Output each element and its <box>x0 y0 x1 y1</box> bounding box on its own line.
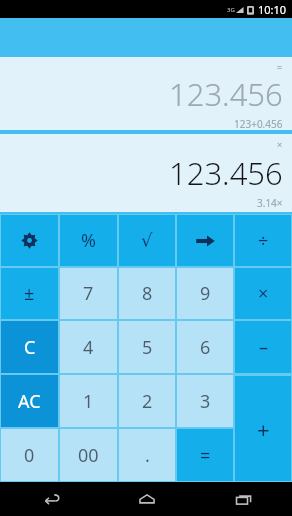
staticText: 1 <box>83 389 94 414</box>
button[interactable]: 1 <box>60 375 117 427</box>
button[interactable]: 4 <box>60 321 117 373</box>
button[interactable]: C <box>1 321 58 373</box>
button[interactable]: = <box>0 57 292 130</box>
button[interactable]: × <box>235 268 291 319</box>
staticText: 7 <box>83 281 94 306</box>
button[interactable]: + <box>235 376 291 481</box>
staticText: . <box>145 443 150 468</box>
staticText: × <box>277 138 283 150</box>
staticText: 00 <box>78 443 99 468</box>
staticText: 3 <box>200 389 211 414</box>
button[interactable]: Recents <box>195 482 292 516</box>
button[interactable]: Settings <box>1 215 58 266</box>
button[interactable]: × <box>0 134 292 212</box>
button[interactable]: √ <box>119 215 175 266</box>
staticText: 10:10 <box>258 2 287 17</box>
staticText: = <box>277 61 283 73</box>
button[interactable]: 00 <box>60 429 117 481</box>
button[interactable]: ÷ <box>235 215 291 266</box>
button[interactable]: 7 <box>60 268 117 319</box>
staticText: 3G <box>227 6 235 14</box>
button[interactable]: 5 <box>119 321 175 373</box>
button[interactable]: – <box>235 321 291 373</box>
button[interactable]: Back <box>0 482 98 516</box>
button[interactable]: 0 <box>1 429 58 481</box>
staticText: 0 <box>24 443 35 468</box>
staticText: 5 <box>142 335 153 360</box>
button[interactable]: 8 <box>119 268 175 319</box>
staticText: 123+0.456 <box>234 117 283 128</box>
staticText: √ <box>141 230 153 251</box>
staticText: 8 <box>142 281 153 306</box>
button[interactable]: 2 <box>119 375 175 427</box>
button[interactable]: % <box>60 215 117 266</box>
button[interactable]: . <box>119 429 175 481</box>
button[interactable]: Home <box>98 482 195 516</box>
staticText: AC <box>18 389 41 414</box>
button[interactable]: 3 <box>177 375 233 427</box>
staticText: % <box>81 228 96 253</box>
staticText: C <box>24 335 36 360</box>
staticText: 2 <box>142 389 153 414</box>
staticText: – <box>259 335 268 360</box>
staticText: 4 <box>83 335 94 360</box>
button[interactable]: ± <box>1 268 58 319</box>
button[interactable]: Backspace <box>177 215 233 266</box>
staticText: 3.14× <box>257 196 283 210</box>
staticText: = <box>200 443 211 468</box>
staticText: 123.456 <box>169 73 283 115</box>
staticText: × <box>258 281 269 306</box>
button[interactable]: 9 <box>177 268 233 319</box>
button[interactable]: 6 <box>177 321 233 373</box>
staticText: 9 <box>200 281 211 306</box>
staticText: 123.456 <box>169 152 283 194</box>
staticText: ± <box>24 281 35 306</box>
button[interactable]: AC <box>1 375 58 427</box>
button[interactable]: = <box>177 429 233 481</box>
staticText: + <box>257 414 270 444</box>
staticText: 6 <box>200 335 211 360</box>
staticText: ÷ <box>258 228 269 253</box>
